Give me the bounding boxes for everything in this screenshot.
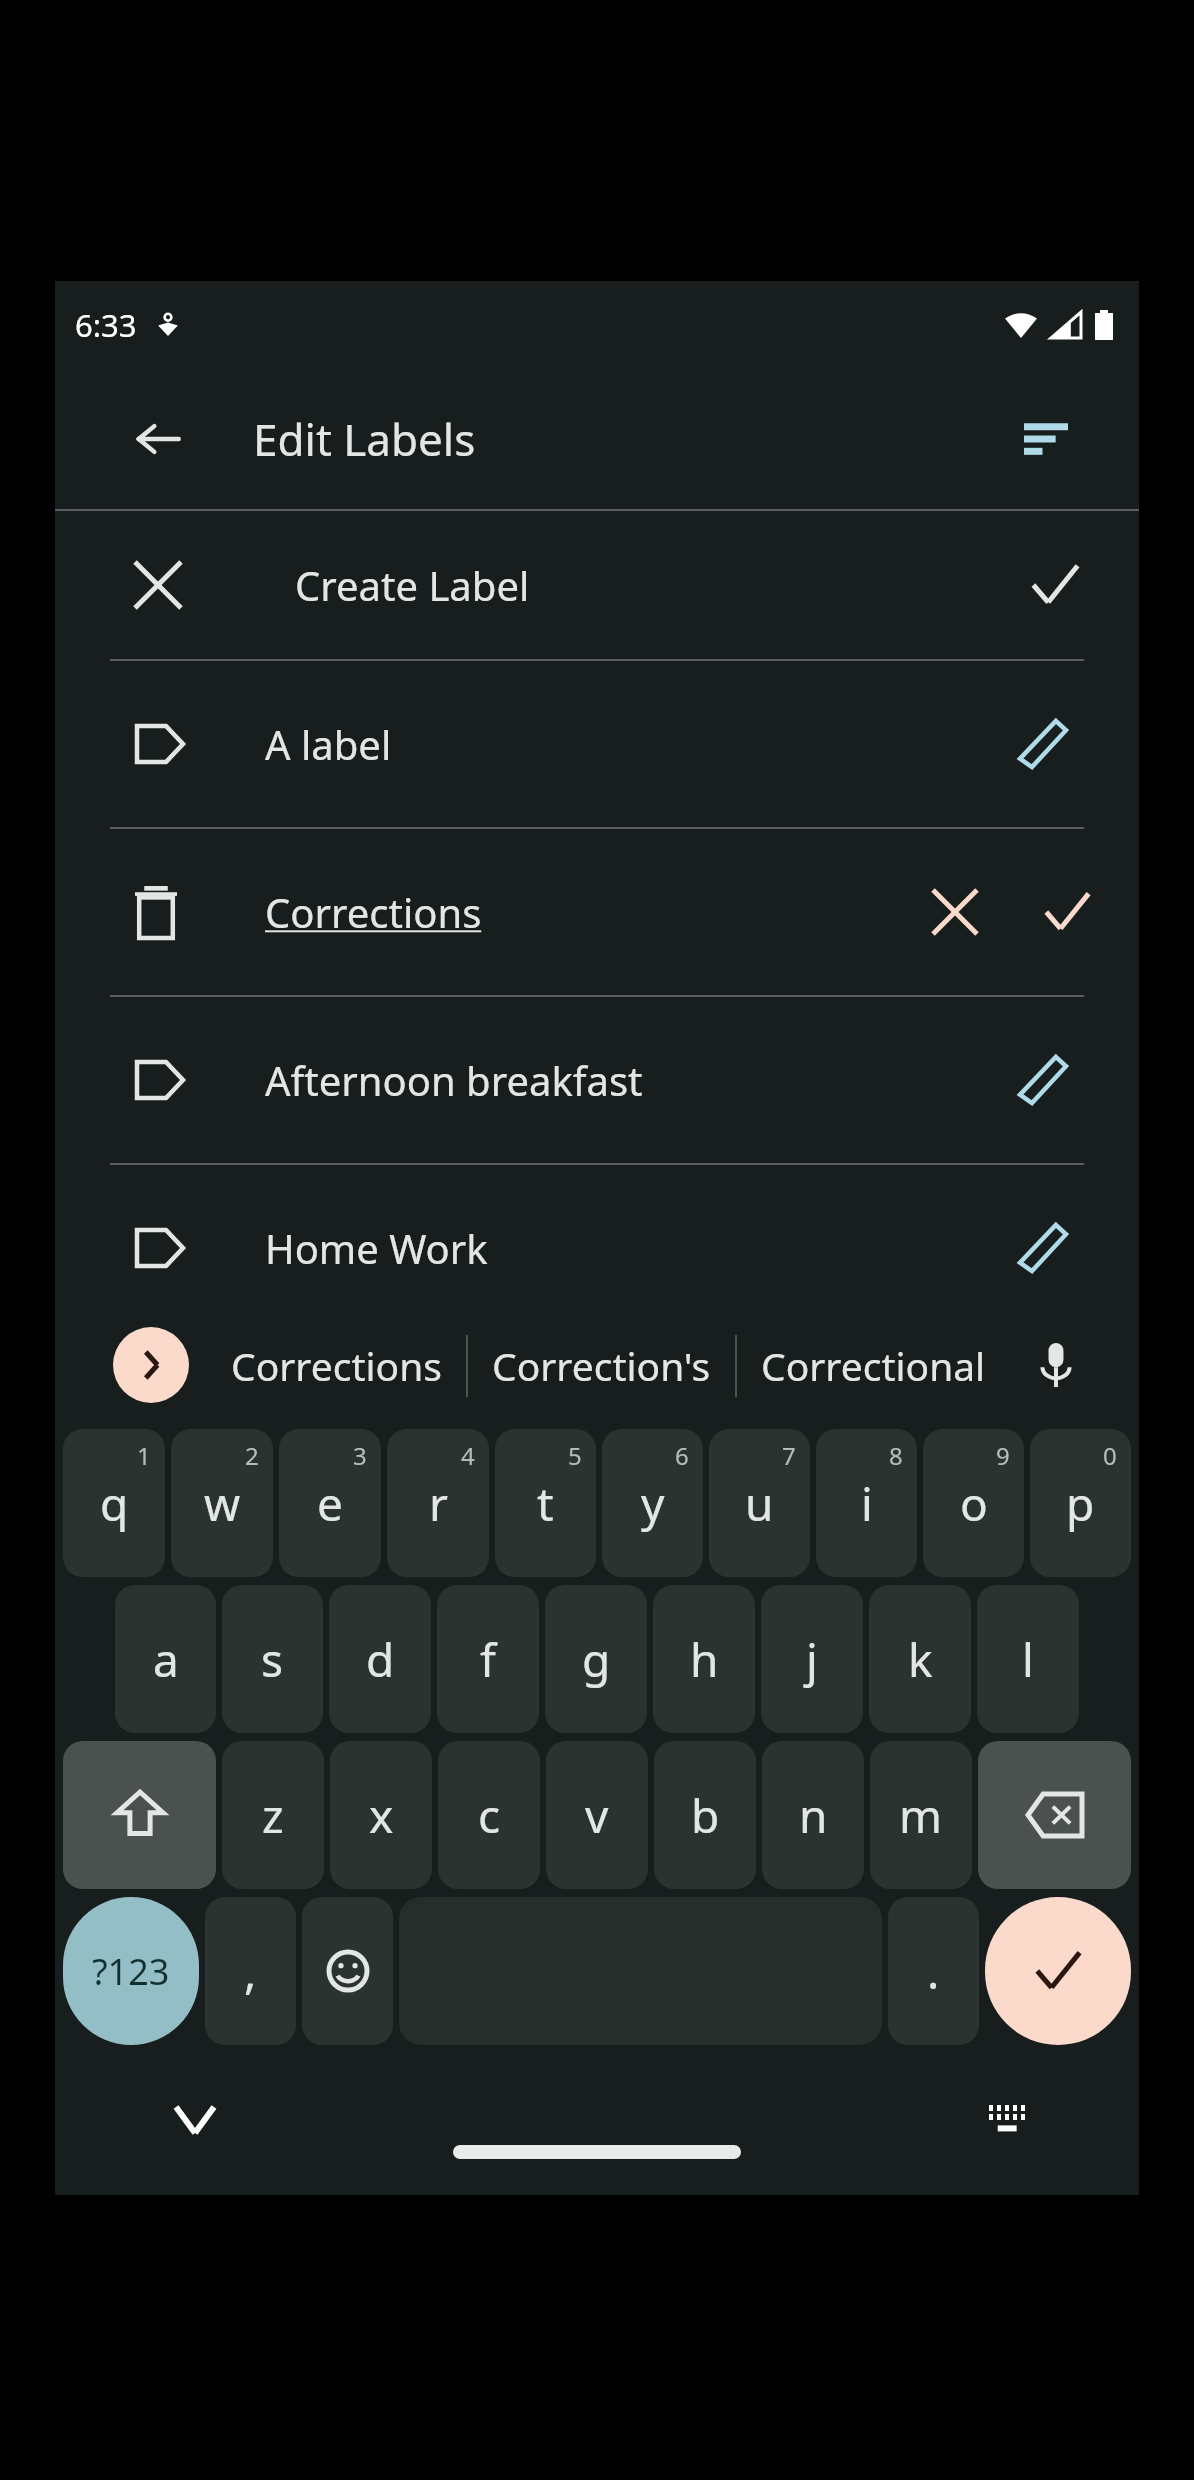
button[interactable]: Voice input bbox=[1021, 1330, 1091, 1400]
button[interactable]: l bbox=[977, 1585, 1079, 1733]
button[interactable]: b bbox=[654, 1741, 756, 1889]
staticText: s bbox=[261, 1628, 284, 1691]
button[interactable]: s bbox=[222, 1585, 323, 1733]
button[interactable]: i bbox=[816, 1429, 917, 1577]
staticText: i bbox=[861, 1472, 873, 1535]
button[interactable]: Backspace bbox=[978, 1741, 1131, 1889]
button[interactable]: ?123 bbox=[63, 1897, 199, 2045]
staticText: 6 bbox=[675, 1439, 689, 1472]
staticText: x bbox=[369, 1784, 394, 1847]
staticText: m bbox=[899, 1784, 943, 1847]
staticText: ?123 bbox=[92, 1947, 170, 1996]
button[interactable]: Confirm bbox=[1035, 880, 1099, 944]
button[interactable]: Shift bbox=[63, 1741, 216, 1889]
button[interactable]: More suggestions bbox=[113, 1327, 189, 1403]
button[interactable]: h bbox=[653, 1585, 755, 1733]
button[interactable]: p bbox=[1030, 1429, 1131, 1577]
button[interactable]: u bbox=[709, 1429, 810, 1577]
staticText: Create Label bbox=[295, 558, 530, 612]
button[interactable]: q bbox=[63, 1429, 165, 1577]
button[interactable]: n bbox=[762, 1741, 864, 1889]
staticText: g bbox=[582, 1628, 611, 1691]
staticText: y bbox=[641, 1472, 665, 1535]
button[interactable]: Enter bbox=[985, 1897, 1131, 2045]
staticText: 3 bbox=[353, 1439, 367, 1472]
staticText: e bbox=[317, 1472, 343, 1535]
button[interactable]: x bbox=[330, 1741, 432, 1889]
button[interactable]: k bbox=[869, 1585, 971, 1733]
button[interactable]: Cancel bbox=[923, 880, 987, 944]
staticText: f bbox=[480, 1628, 496, 1691]
staticText: u bbox=[745, 1472, 774, 1535]
button[interactable]: Sort bbox=[1008, 401, 1084, 477]
staticText: l bbox=[1022, 1628, 1034, 1691]
staticText: j bbox=[806, 1628, 818, 1691]
staticText: r bbox=[429, 1472, 448, 1535]
staticText: t bbox=[537, 1472, 554, 1535]
staticText: v bbox=[585, 1784, 609, 1847]
staticText: d bbox=[366, 1628, 395, 1691]
staticText: z bbox=[262, 1784, 284, 1847]
button[interactable]: . bbox=[888, 1897, 979, 2045]
button[interactable]: c bbox=[438, 1741, 540, 1889]
button[interactable]: v bbox=[546, 1741, 648, 1889]
button[interactable]: j bbox=[761, 1585, 863, 1733]
button[interactable]: Home Work bbox=[55, 1165, 1139, 1331]
staticText: Home Work bbox=[265, 1221, 488, 1275]
button[interactable]: m bbox=[870, 1741, 972, 1889]
staticText: 7 bbox=[782, 1439, 796, 1472]
button[interactable]: Back bbox=[123, 404, 193, 474]
button[interactable]: r bbox=[387, 1429, 489, 1577]
button[interactable]: Correctional bbox=[755, 1325, 992, 1406]
staticText: 6:33 bbox=[75, 304, 137, 346]
staticText: , bbox=[244, 1940, 257, 2003]
button[interactable]: Corrections bbox=[225, 1325, 448, 1406]
staticText: 0 bbox=[1103, 1439, 1117, 1472]
button[interactable]: a bbox=[115, 1585, 216, 1733]
button[interactable]: y bbox=[602, 1429, 703, 1577]
button[interactable]: Hide keyboard bbox=[165, 2090, 225, 2150]
staticText: Edit Labels bbox=[253, 409, 476, 469]
staticText: p bbox=[1066, 1472, 1095, 1535]
staticText: n bbox=[799, 1784, 828, 1847]
staticText: h bbox=[690, 1628, 719, 1691]
button[interactable]: Create Label bbox=[55, 511, 1139, 659]
button[interactable]: e bbox=[279, 1429, 381, 1577]
button[interactable]: A label bbox=[55, 661, 1139, 827]
button[interactable]: Edit bbox=[1007, 1212, 1079, 1284]
staticText: 5 bbox=[568, 1439, 582, 1472]
button[interactable]: Edit bbox=[1007, 1044, 1079, 1116]
button[interactable]: d bbox=[329, 1585, 431, 1733]
staticText: w bbox=[204, 1472, 241, 1535]
button[interactable]: Edit bbox=[1007, 708, 1079, 780]
staticText: a bbox=[153, 1628, 179, 1691]
button[interactable]: Afternoon breakfast bbox=[55, 997, 1139, 1163]
button[interactable]: Corrections bbox=[55, 829, 1139, 995]
staticText: Corrections bbox=[265, 885, 482, 939]
staticText: 2 bbox=[245, 1439, 259, 1472]
button[interactable]: , bbox=[205, 1897, 296, 2045]
staticText: 9 bbox=[996, 1439, 1010, 1472]
button[interactable]: Emoji bbox=[302, 1897, 393, 2045]
button[interactable]: f bbox=[437, 1585, 539, 1733]
staticText: b bbox=[691, 1784, 720, 1847]
staticText: Afternoon breakfast bbox=[265, 1053, 643, 1107]
button[interactable]: Change keyboard bbox=[979, 2090, 1039, 2150]
staticText: 8 bbox=[889, 1439, 903, 1472]
button[interactable]: w bbox=[171, 1429, 273, 1577]
button[interactable]: Correction's bbox=[486, 1325, 717, 1406]
button[interactable]: z bbox=[222, 1741, 324, 1889]
staticText: q bbox=[100, 1472, 129, 1535]
staticText: 4 bbox=[461, 1439, 475, 1472]
button[interactable]: t bbox=[495, 1429, 596, 1577]
staticText: Corrections bbox=[231, 1339, 442, 1392]
button[interactable]: o bbox=[923, 1429, 1024, 1577]
staticText: . bbox=[927, 1940, 940, 2003]
button[interactable]: g bbox=[545, 1585, 647, 1733]
staticText: 1 bbox=[137, 1439, 151, 1472]
staticText: c bbox=[478, 1784, 501, 1847]
staticText: Correction's bbox=[492, 1339, 711, 1392]
staticText: o bbox=[960, 1472, 988, 1535]
staticText: A label bbox=[265, 717, 392, 771]
